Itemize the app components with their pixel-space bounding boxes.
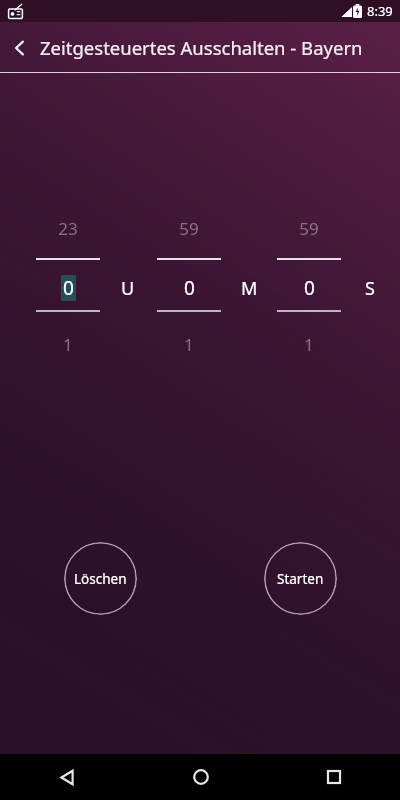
button[interactable]: 0 <box>151 272 227 304</box>
staticText: U <box>121 276 135 301</box>
button[interactable]: 1 <box>151 330 227 358</box>
button[interactable]: 0 <box>30 272 106 304</box>
button[interactable]: 59 <box>151 214 227 242</box>
button[interactable]: 0 <box>271 272 347 304</box>
staticText: 59 <box>299 217 319 240</box>
button[interactable]: 1 <box>30 330 106 358</box>
staticText: 1 <box>304 333 314 356</box>
staticText: Zeitgesteuertes Ausschalten - Bayern <box>40 35 363 60</box>
button[interactable]: 23 <box>30 214 106 242</box>
button[interactable]: Back <box>0 754 134 800</box>
staticText: 23 <box>58 217 78 240</box>
button[interactable]: Recents <box>267 754 400 800</box>
button[interactable]: Home <box>134 754 267 800</box>
staticText: 1 <box>63 333 73 356</box>
button[interactable]: Löschen <box>64 542 137 615</box>
staticText: Starten <box>277 570 324 588</box>
button[interactable]: Back <box>0 28 40 68</box>
button[interactable]: Starten <box>264 542 337 615</box>
staticText: 0 <box>304 275 315 301</box>
staticText: M <box>241 276 258 301</box>
staticText: S <box>365 276 375 301</box>
staticText: 8:39 <box>367 2 393 20</box>
staticText: Löschen <box>74 570 127 588</box>
staticText: 1 <box>184 333 194 356</box>
button[interactable]: 1 <box>271 330 347 358</box>
button[interactable]: 59 <box>271 214 347 242</box>
staticText: 0 <box>63 275 74 301</box>
staticText: 0 <box>184 275 195 301</box>
staticText: 59 <box>179 217 199 240</box>
